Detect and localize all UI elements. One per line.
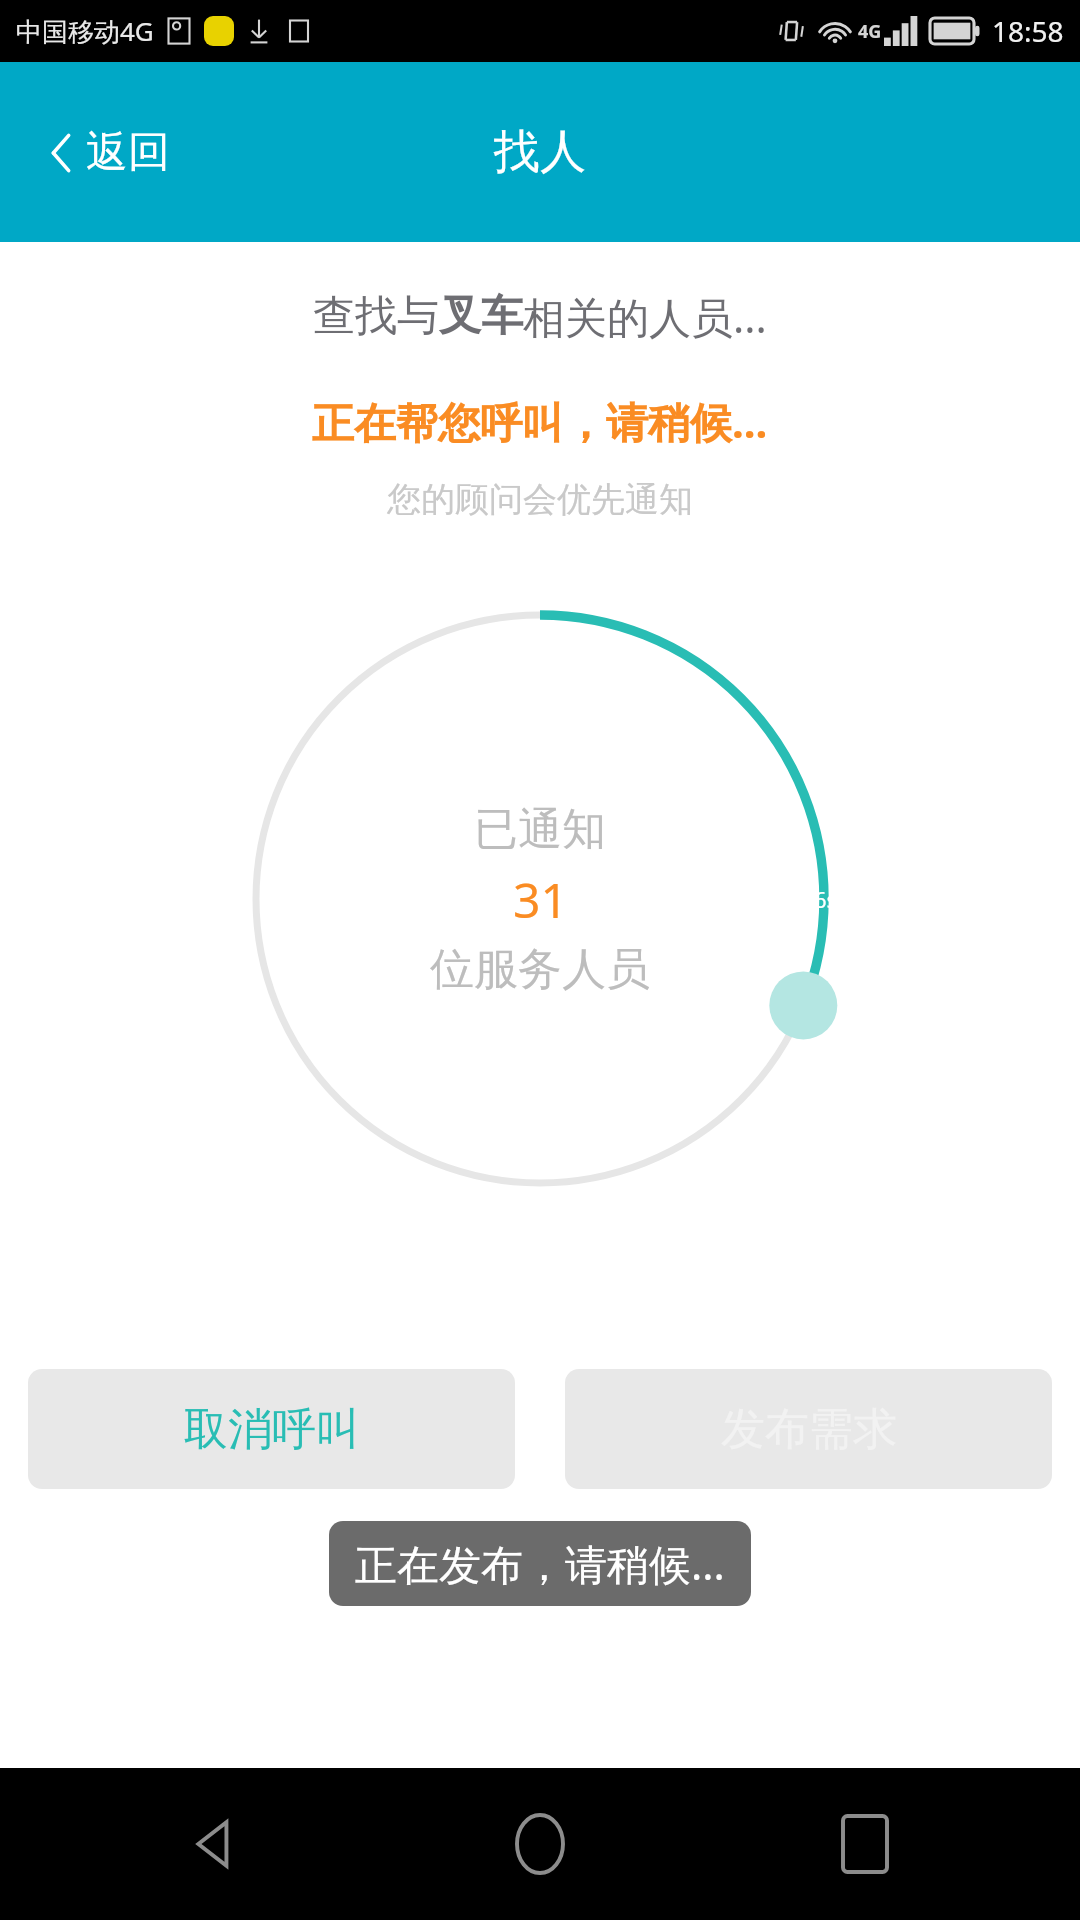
button[interactable]: Home [485, 1789, 595, 1899]
staticText: 已通知 [474, 802, 606, 857]
button[interactable]: Recents [810, 1789, 920, 1899]
staticText: 发布需求 [721, 1402, 897, 1457]
staticText: 31 [513, 867, 568, 932]
button[interactable]: 取消呼叫 [28, 1369, 515, 1489]
staticText: 正在发布，请稍候... [355, 1535, 725, 1592]
staticText: 查找与 [313, 290, 439, 343]
staticText: 返回 [86, 126, 170, 179]
staticText: 相关的人员... [523, 288, 767, 345]
staticText: 找人 [494, 123, 586, 181]
staticText: 叉车 [439, 290, 523, 343]
button[interactable]: 返回 [40, 114, 180, 191]
staticText: 18:58 [992, 12, 1064, 50]
staticText: 6s [814, 884, 838, 914]
staticText: 位服务人员 [430, 942, 650, 997]
staticText: 4G [858, 19, 882, 44]
staticText: 中国移动4G [16, 13, 154, 49]
staticText: 您的顾问会优先通知 [387, 478, 693, 521]
button[interactable]: Back [160, 1789, 270, 1899]
staticText: 正在帮您呼叫，请稍候... [312, 393, 768, 450]
staticText: 取消呼叫 [184, 1402, 360, 1457]
